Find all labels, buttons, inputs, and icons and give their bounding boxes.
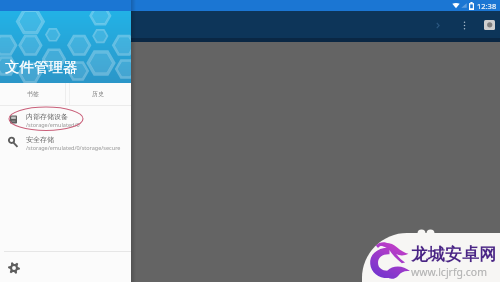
staticText: 内部存储设备 bbox=[26, 112, 68, 121]
staticText: www.lcjrfg.com bbox=[411, 265, 488, 279]
staticText: /storage/emulated/0 bbox=[26, 121, 80, 128]
button[interactable]: 内部存储设备 bbox=[0, 108, 131, 131]
staticText: /storage/emulated/0/storage/secure bbox=[26, 144, 121, 151]
button[interactable]: Settings bbox=[0, 252, 131, 282]
button[interactable]: Forward bbox=[428, 16, 446, 34]
button[interactable]: 安全存储 bbox=[0, 131, 131, 154]
staticText: 安全存储 bbox=[26, 135, 54, 144]
button[interactable]: Screenshot bbox=[481, 17, 497, 33]
staticText: 龙城安卓网 bbox=[411, 244, 496, 265]
staticText: 历史 bbox=[92, 90, 104, 98]
button[interactable]: More options bbox=[455, 16, 473, 34]
button[interactable]: 历史 bbox=[65, 83, 131, 105]
staticText: 12:38 bbox=[477, 1, 497, 11]
staticText: 书签 bbox=[27, 90, 39, 98]
staticText: 文件管理器 bbox=[5, 58, 78, 76]
button[interactable]: 书签 bbox=[0, 83, 65, 105]
